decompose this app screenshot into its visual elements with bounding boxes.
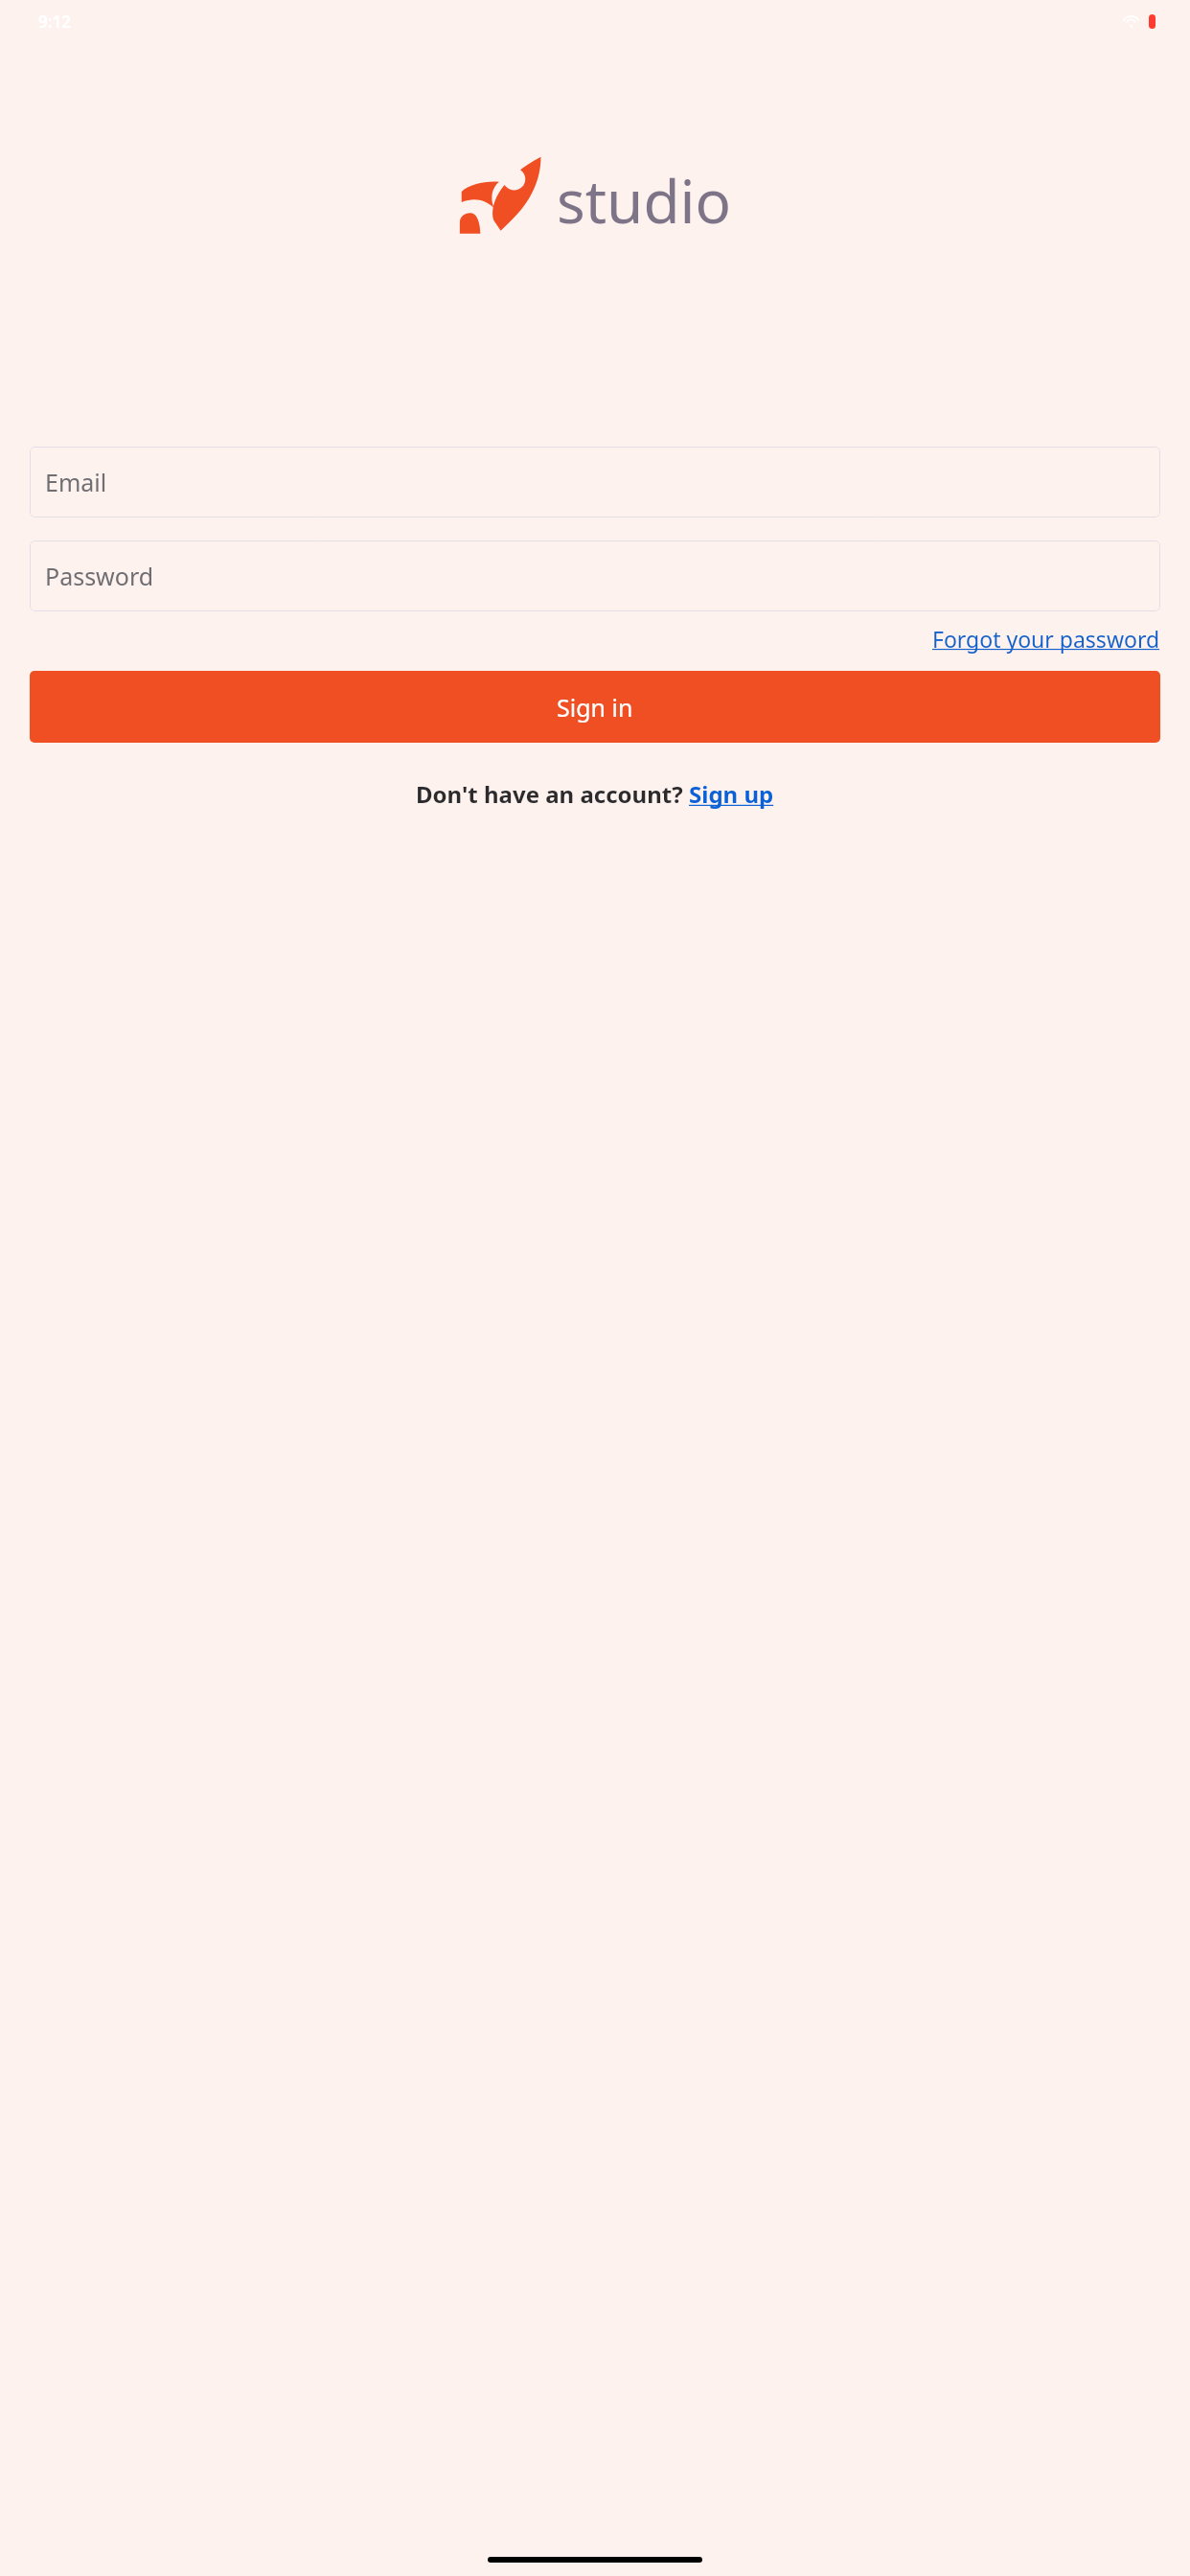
staticText: Sign in	[557, 691, 633, 724]
staticText: Don't have an account?	[416, 778, 683, 810]
staticText: Sign up	[689, 778, 774, 810]
button[interactable]: Sign in	[30, 671, 1160, 743]
button[interactable]: Sign up	[689, 778, 774, 810]
staticText: Forgot your password	[932, 624, 1160, 654]
button[interactable]: Forgot your password	[932, 624, 1160, 654]
staticText: Password	[45, 560, 154, 592]
other: Studio logo	[458, 152, 547, 241]
button[interactable]: Password	[30, 540, 1160, 611]
staticText: Email	[45, 466, 107, 498]
staticText: studio	[557, 160, 732, 241]
staticText: 9:12	[38, 11, 71, 33]
button[interactable]: Email	[30, 447, 1160, 517]
